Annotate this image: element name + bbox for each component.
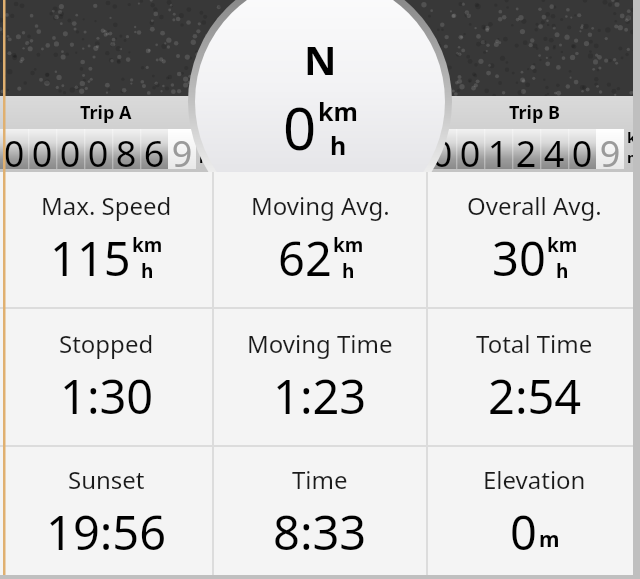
button[interactable]: Trip A xyxy=(0,96,212,172)
staticText: h xyxy=(330,128,347,162)
staticText: 0 xyxy=(428,129,456,169)
staticText: km xyxy=(132,232,163,258)
staticText: 1:23 xyxy=(273,364,367,428)
button[interactable]: Time xyxy=(214,447,426,579)
staticText: Trip B xyxy=(509,100,560,125)
staticText: m xyxy=(539,525,560,554)
button[interactable]: Sunset xyxy=(0,447,212,579)
staticText: 8 xyxy=(112,129,140,169)
staticText: 115 xyxy=(50,226,131,290)
staticText: 9 xyxy=(596,129,624,169)
staticText: 0 xyxy=(568,129,596,169)
staticText: Sunset xyxy=(68,463,145,496)
staticText: 19:56 xyxy=(46,500,167,564)
staticText: km xyxy=(318,94,358,128)
staticText: 0 xyxy=(510,500,537,564)
staticText: 1 xyxy=(484,129,512,169)
staticText: 0 xyxy=(456,129,484,169)
button[interactable]: Moving Time xyxy=(214,309,426,445)
staticText: m xyxy=(627,147,640,167)
staticText: km xyxy=(333,232,364,258)
staticText: Max. Speed xyxy=(41,189,172,222)
button[interactable]: Elevation xyxy=(428,447,640,579)
staticText: km xyxy=(547,232,578,258)
staticText: 1:30 xyxy=(60,364,154,428)
button[interactable]: Max. Speed xyxy=(0,172,212,307)
staticText: 2 xyxy=(512,129,540,169)
staticText: Total Time xyxy=(476,327,593,360)
staticText: k xyxy=(199,127,209,147)
staticText: Stopped xyxy=(59,327,154,360)
staticText: 0 xyxy=(283,88,317,167)
staticText: 30 xyxy=(492,226,546,290)
button[interactable]: Moving Avg. xyxy=(214,172,426,307)
staticText: 0 xyxy=(56,129,84,169)
staticText: 6 xyxy=(140,129,168,169)
button[interactable]: Trip B xyxy=(428,96,640,172)
staticText: m xyxy=(199,147,212,167)
staticText: Moving Time xyxy=(247,327,393,360)
staticText: Time xyxy=(292,463,348,496)
staticText: N xyxy=(304,32,337,86)
staticText: Elevation xyxy=(483,463,586,496)
button[interactable]: Overall Avg. xyxy=(428,172,640,307)
staticText: h xyxy=(556,258,569,284)
staticText: 0 xyxy=(84,129,112,169)
staticText: k xyxy=(627,127,637,147)
button[interactable]: Total Time xyxy=(428,309,640,445)
staticText: Trip A xyxy=(80,100,132,125)
staticText: 0 xyxy=(28,129,56,169)
staticText: 0 xyxy=(0,129,28,169)
staticText: Moving Avg. xyxy=(251,189,390,222)
staticText: 62 xyxy=(278,226,332,290)
staticText: 2:54 xyxy=(488,364,582,428)
staticText: 8:33 xyxy=(273,500,367,564)
staticText: Overall Avg. xyxy=(467,189,602,222)
staticText: h xyxy=(342,258,355,284)
staticText: 9 xyxy=(168,129,196,169)
staticText: 4 xyxy=(540,129,568,169)
button[interactable]: Stopped xyxy=(0,309,212,445)
staticText: h xyxy=(141,258,154,284)
